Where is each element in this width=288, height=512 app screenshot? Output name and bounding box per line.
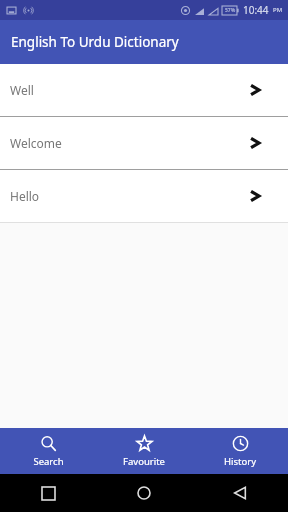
staticText: Well	[10, 82, 34, 98]
staticText: 10:44	[243, 3, 269, 17]
staticText: 57%	[225, 7, 236, 14]
button[interactable]: Favourite	[96, 431, 192, 472]
staticText: Search	[33, 455, 64, 468]
staticText: Welcome	[10, 135, 62, 151]
button[interactable]: Back	[192, 486, 288, 500]
button[interactable]: Recent apps	[0, 487, 96, 500]
staticText: Favourite	[123, 455, 165, 468]
button[interactable]: History	[192, 431, 288, 472]
staticText: PM	[273, 6, 283, 14]
button[interactable]: Welcome	[0, 117, 288, 169]
staticText: Hello	[10, 188, 40, 204]
button[interactable]: Home	[96, 486, 192, 500]
button[interactable]: Hello	[0, 170, 288, 222]
button[interactable]: Well	[0, 64, 288, 116]
staticText: History	[224, 455, 256, 468]
staticText: English To Urdu Dictionary	[11, 33, 179, 51]
button[interactable]: Search	[0, 431, 96, 472]
